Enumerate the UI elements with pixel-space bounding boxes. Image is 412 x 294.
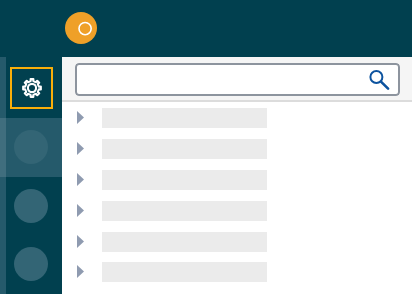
button[interactable]: Profile: [65, 12, 97, 44]
button[interactable]: [62, 170, 412, 190]
button[interactable]: Item: [14, 189, 48, 223]
button[interactable]: Search: [75, 63, 400, 96]
button[interactable]: Settings: [10, 67, 53, 109]
button[interactable]: Item: [14, 247, 48, 281]
button[interactable]: [62, 232, 412, 252]
button[interactable]: [62, 108, 412, 128]
button[interactable]: [62, 139, 412, 159]
button[interactable]: [62, 262, 412, 282]
button[interactable]: [62, 201, 412, 221]
button[interactable]: Item: [14, 130, 48, 164]
